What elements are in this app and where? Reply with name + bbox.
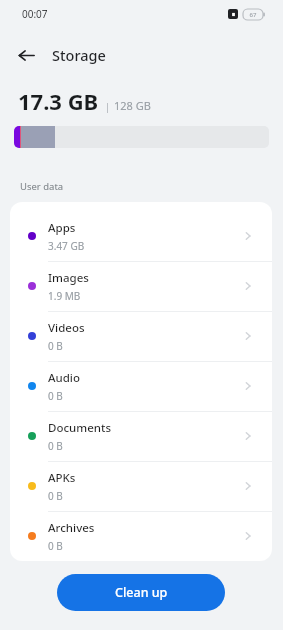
staticText: 0 B [48,339,63,353]
staticText: 3.47 GB [48,239,85,253]
staticText: User data [20,180,64,193]
button[interactable]: Archives [10,511,272,561]
staticText: Audio [48,370,81,386]
staticText: Documents [48,420,111,436]
staticText: Videos [48,320,85,336]
staticText: Apps [48,220,76,236]
button[interactable]: Apps [10,211,272,261]
staticText: Storage [52,45,106,65]
staticText: Images [48,270,89,286]
staticText: 1.9 MB [48,289,81,303]
button[interactable]: Audio [10,361,272,411]
staticText: 17.3 GB [18,86,99,116]
staticText: 0 B [48,489,63,503]
button[interactable]: Documents [10,411,272,461]
button[interactable]: Videos [10,311,272,361]
staticText: 0 B [48,439,63,453]
button[interactable]: Clean up [57,574,225,611]
staticText: Archives [48,520,95,536]
staticText: 67 [243,11,263,19]
button[interactable]: Back [10,40,42,70]
staticText: Clean up [115,584,168,601]
button[interactable]: APKs [10,461,272,511]
staticText: 0 B [48,389,63,403]
staticText: 0 B [48,539,63,553]
staticText: APKs [48,470,76,486]
button[interactable]: Images [10,261,272,311]
staticText: 00:07 [22,7,48,21]
staticText: 128 GB [114,98,151,113]
